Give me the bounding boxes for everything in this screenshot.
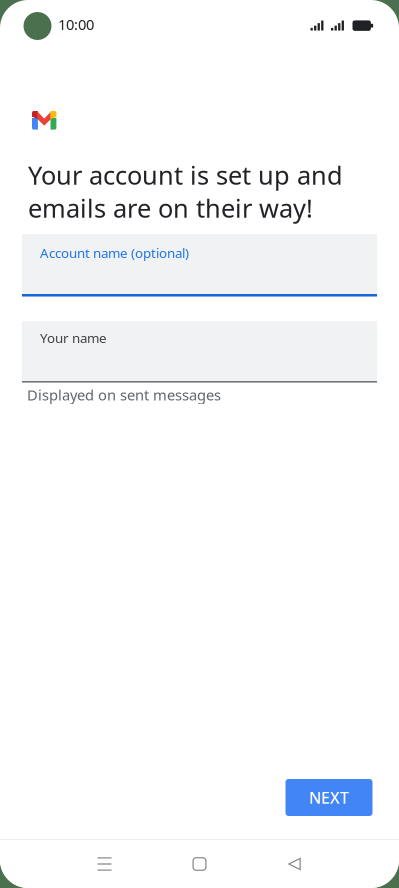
staticText: Account name (optional) [40, 244, 189, 262]
button[interactable]: Account name (optional) [22, 234, 377, 296]
button[interactable]: Home [152, 840, 247, 888]
staticText: Displayed on sent messages [27, 385, 221, 404]
button[interactable]: NEXT [285, 779, 372, 816]
staticText: Your name [40, 329, 107, 347]
button[interactable]: Back [247, 840, 342, 888]
button[interactable]: Your name [22, 321, 377, 383]
button[interactable]: Recent apps [57, 840, 152, 888]
staticText: 10:00 [58, 14, 94, 34]
staticText: emails are on their way! [28, 191, 313, 225]
staticText: Your account is set up and [28, 158, 343, 192]
staticText: NEXT [309, 787, 349, 808]
